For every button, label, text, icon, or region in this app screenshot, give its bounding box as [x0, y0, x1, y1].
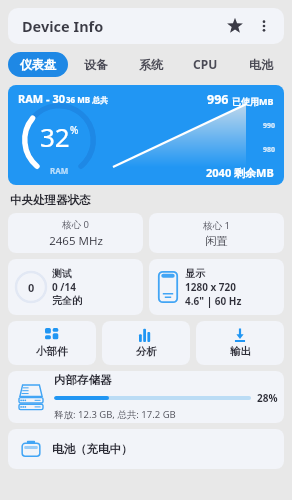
button[interactable]: 分析: [102, 321, 190, 365]
staticText: 4.6" | 60 Hz: [185, 294, 242, 308]
button[interactable]: 0: [8, 259, 143, 315]
staticText: 2465 MHz: [49, 233, 103, 249]
button[interactable]: CPU: [178, 50, 233, 78]
staticText: 32: [40, 119, 70, 154]
button[interactable]: 输出: [196, 321, 284, 365]
staticText: 核心 0: [62, 218, 89, 231]
button[interactable]: 内部存储器: [8, 371, 284, 423]
staticText: 2040 剩余MB: [206, 165, 274, 180]
staticText: 测试: [52, 267, 72, 280]
button[interactable]: More options: [250, 12, 278, 40]
staticText: 中央处理器状态: [10, 193, 91, 207]
staticText: 输出: [230, 345, 251, 358]
button[interactable]: 核心 0: [8, 213, 143, 253]
button[interactable]: 设备: [68, 51, 123, 78]
staticText: 显示: [185, 267, 205, 280]
staticText: 990: [263, 121, 276, 131]
staticText: %: [70, 123, 79, 137]
button[interactable]: 核心 1: [149, 213, 284, 253]
staticText: 小部件: [36, 345, 68, 358]
staticText: 电池（充电中）: [52, 442, 133, 456]
button[interactable]: 显示: [149, 259, 284, 315]
staticText: 28%: [257, 391, 278, 405]
staticText: CPU: [193, 56, 218, 72]
staticText: 系统: [139, 57, 163, 72]
button[interactable]: 小部件: [8, 321, 96, 365]
button[interactable]: 电池: [233, 51, 288, 78]
staticText: 分析: [136, 345, 157, 358]
staticText: 电池: [249, 57, 273, 72]
staticText: RAM: [50, 165, 69, 176]
staticText: 设备: [84, 57, 108, 72]
button[interactable]: Favorite: [220, 11, 250, 41]
staticText: 980: [263, 145, 276, 155]
button[interactable]: 电池（充电中）: [8, 429, 284, 469]
staticText: 0 /14: [52, 280, 76, 294]
button[interactable]: 仪表盘: [8, 52, 68, 77]
staticText: 已使用MB: [232, 95, 274, 107]
staticText: 核心 1: [203, 219, 230, 232]
staticText: 闲置: [205, 234, 228, 248]
staticText: Device Info: [22, 16, 104, 36]
staticText: 0: [28, 280, 35, 295]
staticText: 仪表盘: [20, 57, 56, 72]
button[interactable]: 系统: [123, 51, 178, 78]
staticText: 释放: 12.3 GB, 总共: 17.2 GB: [54, 408, 176, 421]
staticText: RAM - 30: [18, 91, 66, 106]
staticText: 36 MB 总共: [66, 94, 109, 105]
staticText: 完全的: [52, 294, 82, 307]
staticText: 996: [207, 91, 232, 108]
button[interactable]: RAM - 30: [8, 85, 284, 185]
staticText: 内部存储器: [54, 373, 112, 387]
staticText: 1280 x 720: [185, 280, 237, 294]
